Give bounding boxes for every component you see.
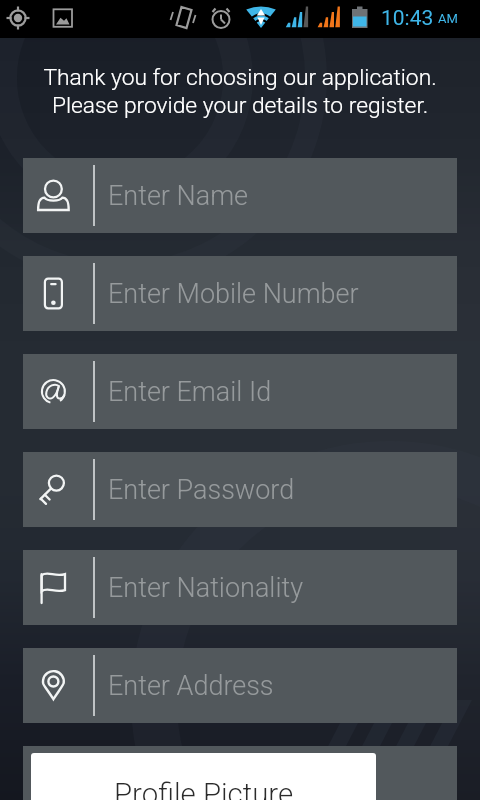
button[interactable]: Enter Password: [23, 452, 457, 527]
button[interactable]: Enter Email Id: [23, 354, 457, 429]
staticText: Enter Name: [108, 180, 249, 212]
button[interactable]: Profile Picture: [31, 753, 376, 800]
button[interactable]: Enter Nationality: [23, 550, 457, 625]
staticText: AM: [438, 11, 458, 26]
staticText: Enter Email Id: [108, 376, 272, 408]
staticText: Enter Address: [108, 670, 274, 702]
staticText: Enter Nationality: [108, 572, 303, 604]
button[interactable]: Enter Address: [23, 648, 457, 723]
staticText: Thank you for choosing our application. …: [0, 64, 480, 119]
staticText: 10:43: [381, 6, 434, 31]
button[interactable]: Enter Name: [23, 158, 457, 233]
staticText: Enter Mobile Number: [108, 278, 359, 310]
button[interactable]: Enter Mobile Number: [23, 256, 457, 331]
staticText: Profile Picture: [114, 777, 294, 800]
staticText: Enter Password: [108, 474, 295, 506]
